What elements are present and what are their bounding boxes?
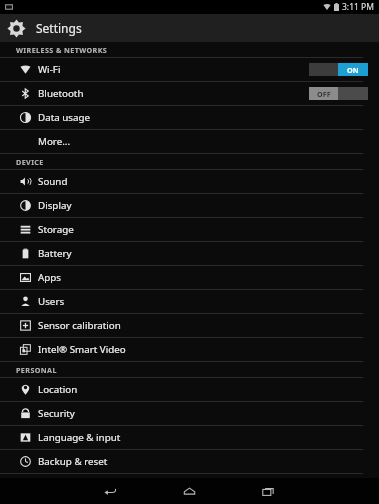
button[interactable]: Wi-Fi xyxy=(0,58,379,81)
button[interactable]: Sensor calibration xyxy=(0,314,379,337)
staticText: Sensor calibration xyxy=(38,319,121,332)
button[interactable]: Display xyxy=(0,194,379,217)
staticText: Security xyxy=(38,407,75,420)
button[interactable]: Back xyxy=(97,478,123,504)
staticText: DEVICE xyxy=(16,157,44,167)
button[interactable]: More... xyxy=(0,130,379,153)
staticText: Sound xyxy=(38,175,68,188)
staticText: Language & input xyxy=(38,431,121,444)
staticText: Display xyxy=(38,199,72,212)
button[interactable]: Recent apps xyxy=(255,478,281,504)
button[interactable]: Language & input xyxy=(0,426,379,449)
button[interactable]: Bluetooth xyxy=(0,82,379,105)
staticText: Storage xyxy=(38,223,74,236)
staticText: ON xyxy=(347,65,359,75)
button[interactable]: Toggle off xyxy=(309,87,368,100)
staticText: Location xyxy=(38,383,78,396)
button[interactable]: Sound xyxy=(0,170,379,193)
button[interactable]: Users xyxy=(0,290,379,313)
staticText: Apps xyxy=(38,271,62,284)
button[interactable]: Backup & reset xyxy=(0,450,379,473)
staticText: Intel® Smart Video xyxy=(38,343,126,356)
button[interactable]: Toggle on xyxy=(309,63,368,76)
button[interactable]: Security xyxy=(0,402,379,425)
button[interactable]: Settings xyxy=(0,14,379,42)
staticText: Battery xyxy=(38,247,72,260)
staticText: 3:11 PM xyxy=(342,1,374,13)
button[interactable]: Home xyxy=(176,478,202,504)
button[interactable]: Data usage xyxy=(0,106,379,129)
button[interactable]: Location xyxy=(0,378,379,401)
staticText: Bluetooth xyxy=(38,87,84,100)
staticText: Data usage xyxy=(38,111,91,124)
staticText: Settings xyxy=(36,20,82,36)
staticText: WIRELESS & NETWORKS xyxy=(16,45,108,55)
staticText: PERSONAL xyxy=(16,365,57,375)
staticText: OFF xyxy=(317,89,331,99)
button[interactable]: Apps xyxy=(0,266,379,289)
staticText: Wi-Fi xyxy=(38,63,61,76)
button[interactable]: Storage xyxy=(0,218,379,241)
staticText: Users xyxy=(38,295,65,308)
button[interactable]: Battery xyxy=(0,242,379,265)
staticText: More... xyxy=(38,135,71,148)
button[interactable]: Intel® Smart Video xyxy=(0,338,379,361)
staticText: Backup & reset xyxy=(38,455,108,468)
